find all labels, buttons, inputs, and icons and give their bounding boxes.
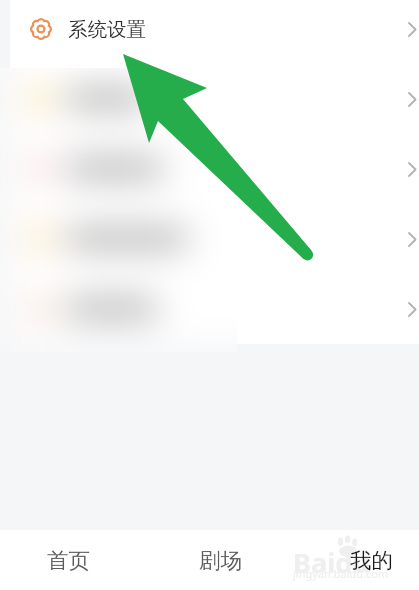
button[interactable]: 设置项 2 [10, 138, 419, 208]
staticText: jingyan.baidu.com [293, 566, 389, 581]
button[interactable]: 展开 [399, 89, 419, 110]
button[interactable]: 展开 [399, 19, 419, 40]
button[interactable]: 设置项 4 [10, 278, 419, 348]
staticText: Baidu [293, 544, 370, 581]
button[interactable]: 设置项 3 [10, 208, 419, 278]
button[interactable]: 设置项 1 [10, 68, 419, 138]
button[interactable]: 展开 [399, 229, 419, 250]
button[interactable]: 剧场 [184, 530, 256, 590]
button[interactable]: 展开 [399, 159, 419, 180]
staticText: 首页 [47, 547, 90, 574]
button[interactable]: 展开 [399, 299, 419, 320]
button[interactable]: 我的 [335, 530, 407, 590]
staticText: 剧场 [199, 547, 242, 574]
button[interactable]: 首页 [32, 530, 104, 590]
staticText: 我的 [350, 547, 393, 574]
staticText: 系统设置 [68, 17, 146, 42]
button[interactable]: 系统设置 [10, 0, 419, 58]
